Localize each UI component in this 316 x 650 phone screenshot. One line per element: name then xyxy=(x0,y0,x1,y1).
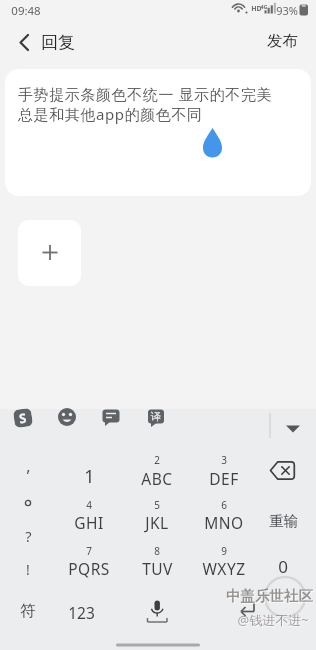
staticText: 7 xyxy=(86,544,92,558)
staticText: 8 xyxy=(154,544,160,558)
button[interactable] xyxy=(123,446,190,500)
staticText: 0 xyxy=(278,555,288,578)
button[interactable] xyxy=(276,402,310,436)
staticText: 93% xyxy=(276,3,298,18)
button[interactable] xyxy=(18,220,81,286)
staticText: 4G xyxy=(260,3,268,10)
button[interactable] xyxy=(5,69,311,196)
staticText: @钱进不进~ xyxy=(237,611,309,629)
button[interactable] xyxy=(0,490,56,524)
staticText: WXYZ xyxy=(202,558,246,579)
button[interactable] xyxy=(139,402,173,436)
button[interactable] xyxy=(0,558,56,590)
button[interactable] xyxy=(8,28,40,58)
button[interactable] xyxy=(123,500,190,545)
staticText: ABC xyxy=(141,468,173,489)
button[interactable] xyxy=(260,26,308,58)
staticText: 2 xyxy=(154,453,160,467)
button[interactable] xyxy=(257,500,316,545)
staticText: ? xyxy=(25,526,32,546)
staticText: S xyxy=(18,408,28,427)
staticText: 译 xyxy=(151,410,161,423)
staticText: 09:48 xyxy=(11,3,41,19)
button[interactable] xyxy=(56,500,123,545)
button[interactable] xyxy=(0,524,56,558)
button[interactable] xyxy=(257,545,316,590)
staticText: 4 xyxy=(86,498,92,512)
button[interactable] xyxy=(257,446,316,500)
button[interactable] xyxy=(56,446,123,500)
staticText: , xyxy=(26,455,31,477)
staticText: 发布 xyxy=(267,31,298,51)
staticText: 手势提示条颜色不统一 显示的不完美 总是和其他app的颜色不同 xyxy=(18,84,273,125)
button[interactable] xyxy=(94,402,128,436)
staticText: 3 xyxy=(221,453,227,467)
button[interactable] xyxy=(123,590,190,635)
button[interactable] xyxy=(257,590,316,635)
button[interactable] xyxy=(40,28,80,58)
button[interactable] xyxy=(0,446,56,490)
staticText: 重输 xyxy=(269,512,298,530)
staticText: @钱进不进~ xyxy=(238,612,310,630)
staticText: HD xyxy=(251,4,262,14)
staticText: 符 xyxy=(20,601,36,621)
staticText: 1 xyxy=(84,464,95,489)
staticText: MNO xyxy=(204,512,244,533)
staticText: 5 xyxy=(154,498,160,512)
staticText: TUV xyxy=(142,558,173,579)
button[interactable] xyxy=(190,446,257,500)
button[interactable] xyxy=(190,590,257,635)
staticText: 中盖乐世社区 xyxy=(226,587,313,605)
staticText: 回复 xyxy=(41,32,75,53)
staticText: PQRS xyxy=(68,558,110,579)
button[interactable] xyxy=(190,545,257,590)
button[interactable] xyxy=(0,590,56,635)
button[interactable] xyxy=(190,500,257,545)
staticText: 9 xyxy=(221,544,227,558)
staticText: ! xyxy=(26,560,30,579)
staticText: 6 xyxy=(221,498,227,512)
button[interactable] xyxy=(50,402,84,436)
button[interactable] xyxy=(6,402,40,436)
button[interactable] xyxy=(56,545,123,590)
button[interactable] xyxy=(123,545,190,590)
staticText: 中盖乐世社区 xyxy=(227,588,314,606)
staticText: 123 xyxy=(68,602,95,623)
staticText: JKL xyxy=(145,512,169,533)
staticText: GHI xyxy=(74,512,104,533)
staticText: DEF xyxy=(209,468,239,489)
button[interactable] xyxy=(56,590,123,635)
